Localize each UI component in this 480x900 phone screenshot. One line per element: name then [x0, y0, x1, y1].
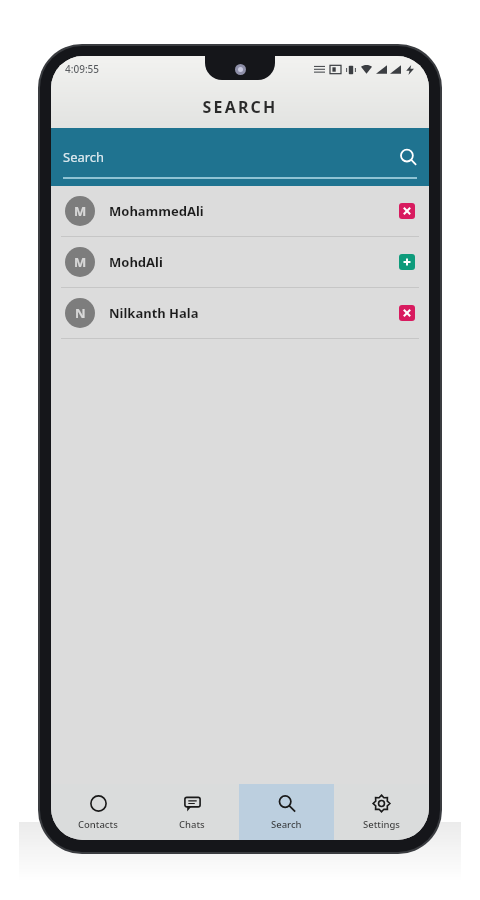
staticText: M	[74, 202, 87, 220]
button[interactable]: Add contact	[399, 254, 415, 270]
button[interactable]: M	[51, 186, 429, 236]
other: Search	[399, 148, 417, 166]
staticText: Search	[271, 818, 302, 831]
staticText: Chats	[179, 818, 205, 831]
staticText: M	[74, 253, 87, 271]
staticText: Contacts	[78, 818, 118, 831]
button[interactable]: N	[51, 288, 429, 338]
button[interactable]: Chats	[145, 784, 239, 840]
button[interactable]: Remove contact	[399, 203, 415, 219]
button[interactable]: Settings	[334, 784, 429, 840]
button[interactable]: Search	[51, 128, 429, 186]
staticText: Nilkanth Hala	[109, 304, 199, 322]
button[interactable]: Search	[239, 784, 334, 840]
button[interactable]: M	[51, 237, 429, 287]
button[interactable]: Remove contact	[399, 305, 415, 321]
staticText: 4:09:55	[65, 62, 100, 76]
staticText: Settings	[363, 818, 400, 831]
staticText: N	[75, 304, 86, 322]
staticText: MohammedAli	[109, 202, 204, 220]
staticText: MohdAli	[109, 253, 163, 271]
button[interactable]: Contacts	[51, 784, 145, 840]
staticText: Search	[63, 148, 105, 166]
staticText: SEARCH	[202, 96, 278, 118]
